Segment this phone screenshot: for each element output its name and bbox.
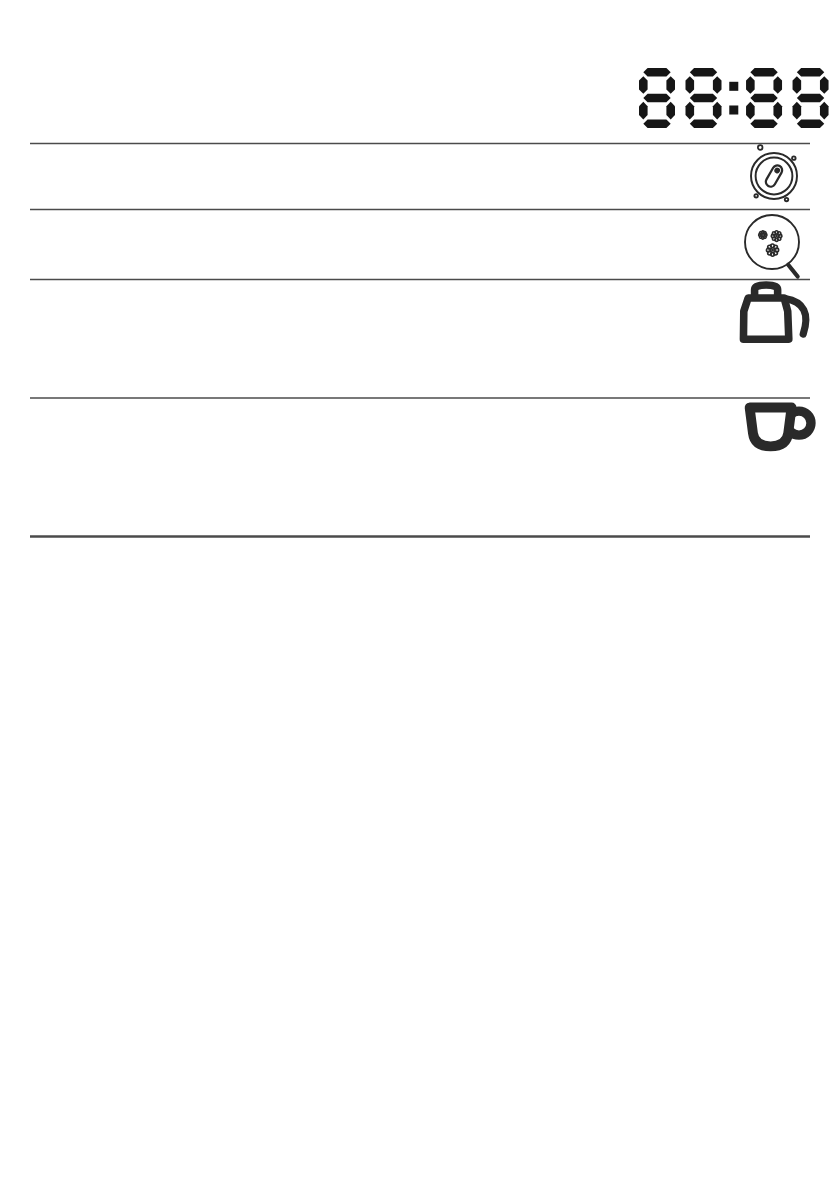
button[interactable]: Cup [744, 398, 816, 454]
button[interactable]: Coffee grounds basket [742, 213, 808, 279]
button[interactable]: Brew strength dial [745, 147, 805, 207]
button[interactable]: Coffee pot [740, 282, 816, 344]
